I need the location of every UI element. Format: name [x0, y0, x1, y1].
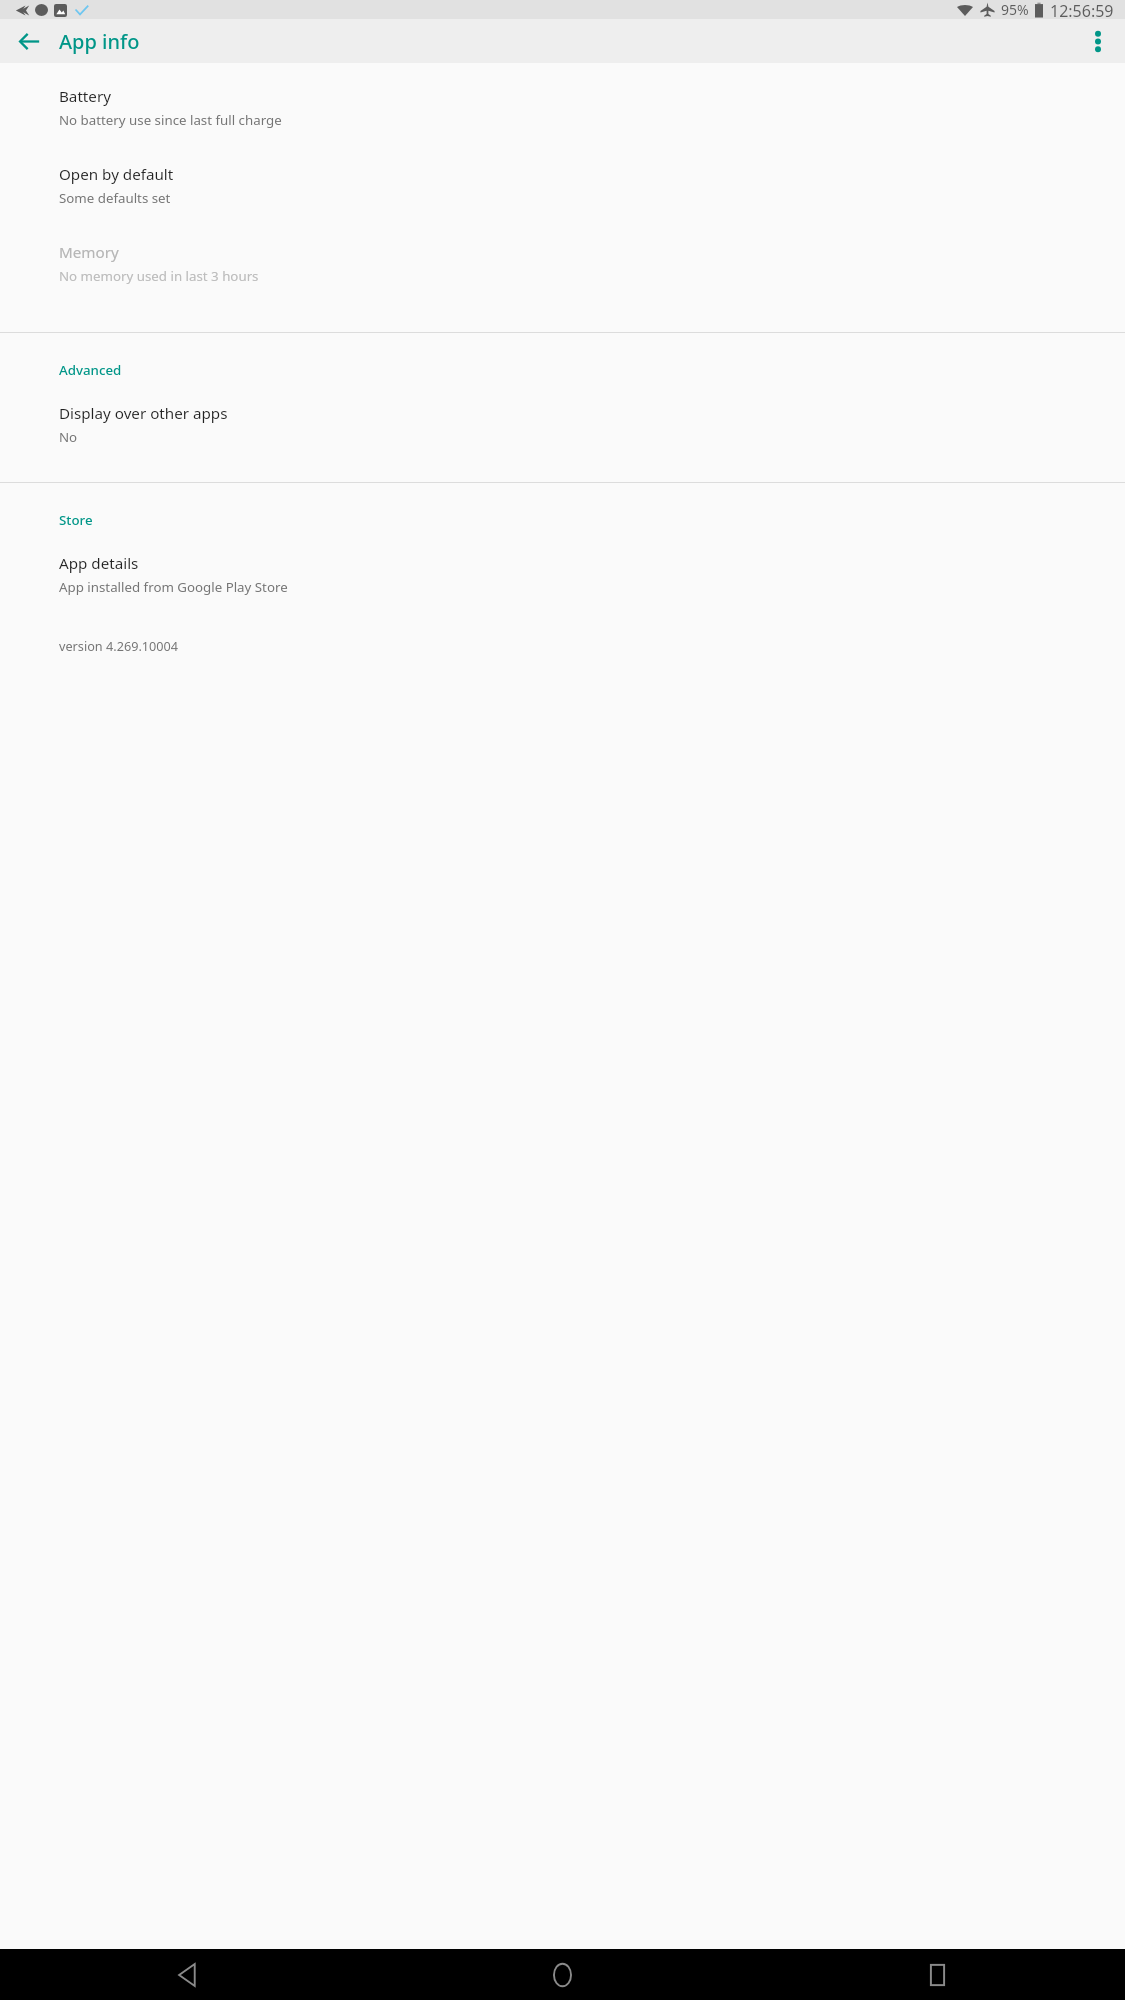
staticText: No battery use since last full charge	[59, 111, 282, 129]
staticText: version 4.269.10004	[59, 637, 179, 654]
button[interactable]: Display over other apps	[0, 395, 1125, 473]
staticText: Display over other apps	[59, 403, 228, 424]
button[interactable]: Battery	[0, 78, 1125, 156]
staticText: Battery	[59, 86, 111, 107]
staticText: App info	[59, 28, 140, 55]
staticText: No memory used in last 3 hours	[59, 267, 259, 285]
button[interactable]: Back	[9, 21, 49, 61]
button[interactable]: Back	[0, 1949, 375, 2000]
staticText: No	[59, 428, 78, 446]
button[interactable]: Home	[375, 1949, 750, 2000]
button[interactable]: More options	[1078, 21, 1118, 61]
staticText: Some defaults set	[59, 189, 171, 207]
staticText: Store	[59, 511, 93, 529]
button[interactable]: App details	[0, 545, 1125, 623]
staticText: Advanced	[59, 361, 122, 379]
staticText: App details	[59, 553, 139, 574]
staticText: 12:56:59	[1050, 0, 1114, 19]
staticText: App installed from Google Play Store	[59, 578, 288, 596]
staticText: 95%	[1001, 0, 1029, 19]
button[interactable]: Recent apps	[750, 1949, 1125, 2000]
button[interactable]: Open by default	[0, 156, 1125, 234]
staticText: Memory	[59, 242, 119, 263]
staticText: Open by default	[59, 164, 174, 185]
button[interactable]: Memory	[0, 234, 1125, 312]
